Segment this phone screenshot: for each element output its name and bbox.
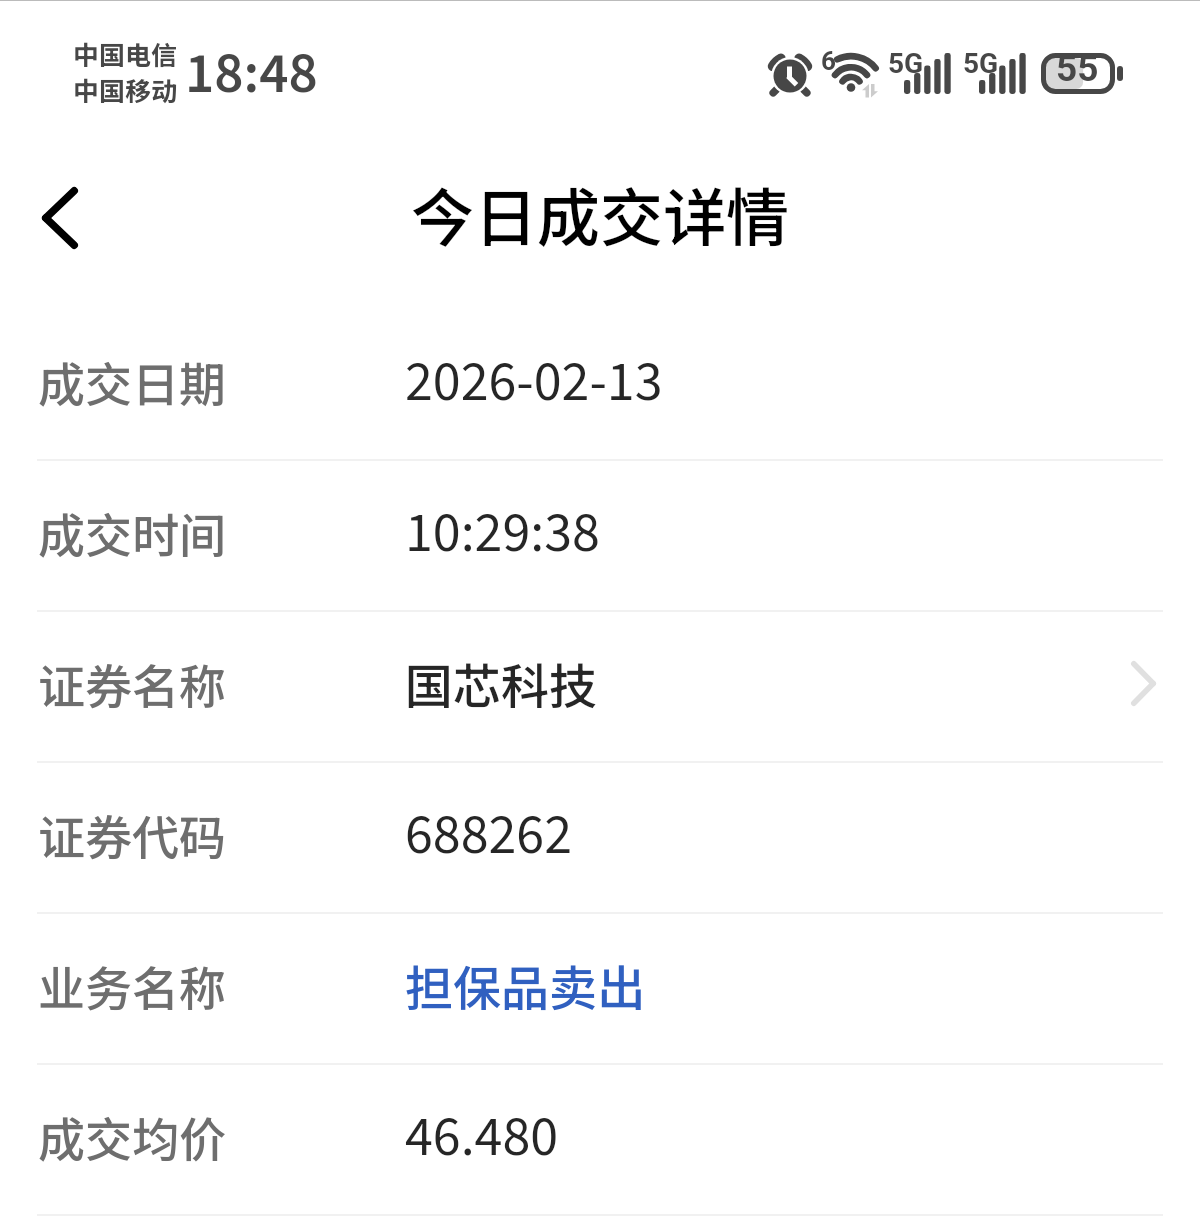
staticText: 10:29:38 [405,494,600,574]
button[interactable]: 成交时间 [0,461,1200,610]
staticText: 担保品卖出 [405,950,646,1020]
button[interactable]: 成交日期 [0,310,1200,459]
staticText: 18:48 [185,34,318,115]
staticText: 证券名称 [38,649,226,717]
button[interactable]: 业务名称 [0,914,1200,1063]
staticText: 55 [1056,47,1099,90]
staticText: 中国电信 [73,35,177,73]
staticText: 6 [821,46,836,76]
button[interactable]: Back [18,176,102,260]
staticText: 成交均价 [38,1102,226,1170]
staticText: 国芯科技 [405,648,598,718]
staticText: 中国移动 [73,71,177,109]
staticText: 688262 [405,796,572,876]
button[interactable]: 证券名称 [0,612,1200,761]
staticText: 46.480 [405,1098,559,1178]
staticText: 业务名称 [38,951,226,1019]
staticText: 5G [963,47,999,80]
staticText: 证券代码 [38,800,226,868]
staticText: 今日成交详情 [411,168,789,259]
button[interactable]: 成交均价 [0,1065,1200,1214]
staticText: 5G [888,47,924,80]
staticText: 成交日期 [38,347,226,415]
button[interactable]: 证券代码 [0,763,1200,912]
staticText: 2026-02-13 [405,343,663,423]
staticText: 成交时间 [38,498,226,566]
